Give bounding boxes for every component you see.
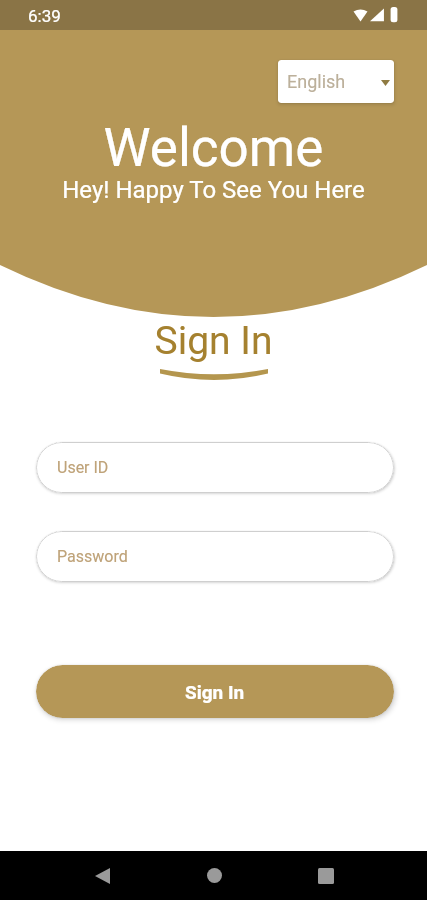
staticText: Sign In	[0, 318, 427, 364]
staticText: Welcome	[0, 117, 427, 179]
staticText: English	[287, 71, 346, 92]
button[interactable]: Password	[36, 531, 394, 582]
staticText: Hey! Happy To See You Here	[0, 176, 427, 204]
staticText: User ID	[57, 458, 109, 477]
button[interactable]: Back	[80, 851, 125, 900]
button[interactable]: Home	[192, 851, 236, 900]
staticText: Password	[57, 547, 128, 566]
button[interactable]: Recent apps	[303, 851, 348, 900]
button[interactable]: Sign In	[36, 665, 394, 718]
button[interactable]: English	[278, 60, 394, 103]
button[interactable]: User ID	[36, 442, 394, 493]
staticText: Sign In	[185, 681, 245, 703]
staticText: 6:39	[28, 6, 61, 26]
